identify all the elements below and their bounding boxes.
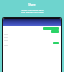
staticText: every moment with the people you love	[21, 8, 44, 14]
staticText: Share	[28, 3, 36, 7]
